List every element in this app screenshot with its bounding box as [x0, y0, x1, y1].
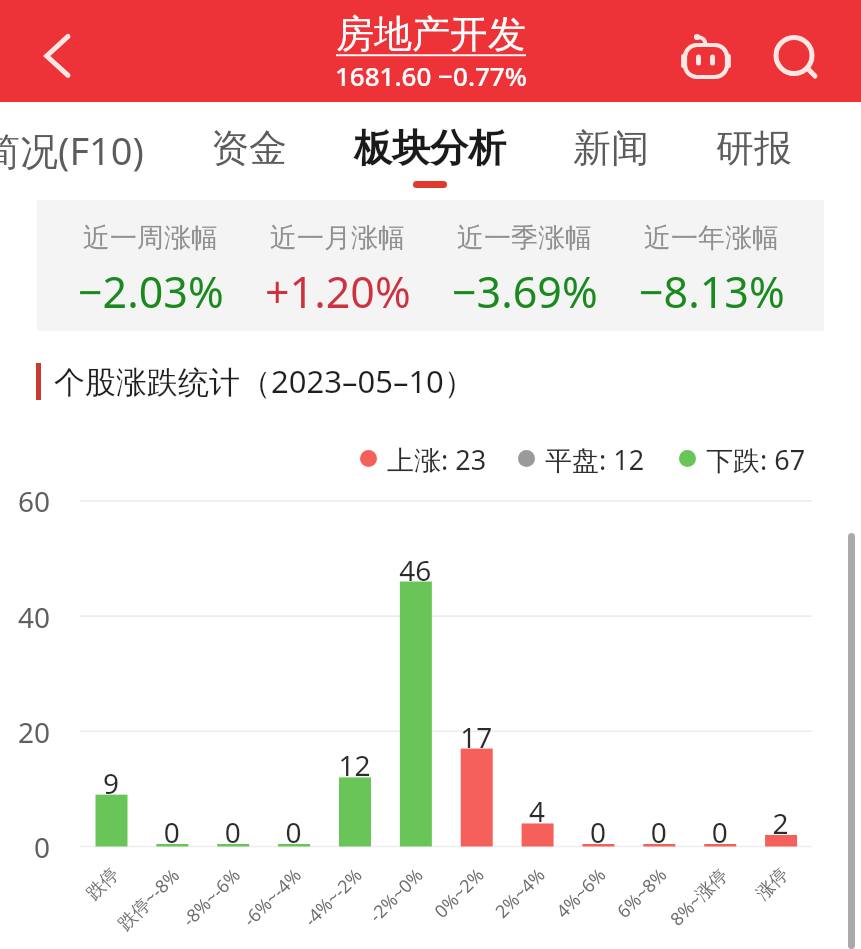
staticText: 下跌: 67 [706, 441, 806, 475]
staticText: 1681.60 −0.77% [335, 58, 527, 93]
staticText: 近一月涨幅 [270, 221, 405, 255]
button[interactable]: 近一月涨幅 [244, 210, 431, 321]
button[interactable]: 上涨: 23 [360, 441, 487, 475]
staticText: 近一季涨幅 [457, 221, 592, 255]
button[interactable]: Search [764, 25, 824, 85]
button[interactable] [665, 110, 805, 180]
staticText: 房地产开发 [336, 10, 526, 58]
staticText: −3.69% [452, 262, 598, 321]
button[interactable]: 平盘: 12 [518, 441, 645, 475]
button[interactable]: 近一年涨幅 [618, 210, 805, 321]
button[interactable]: 近一季涨幅 [431, 210, 618, 321]
staticText: 近一周涨幅 [83, 221, 218, 255]
staticText: 平盘: 12 [545, 441, 645, 475]
button[interactable] [0, 110, 170, 180]
staticText: −8.13% [639, 262, 785, 321]
button[interactable] [310, 110, 525, 180]
button[interactable]: 下跌: 67 [679, 441, 806, 475]
staticText: 上涨: 23 [387, 441, 487, 475]
staticText: +1.20% [265, 262, 411, 321]
button[interactable] [525, 110, 665, 180]
button[interactable] [170, 110, 310, 180]
button[interactable]: 近一周涨幅 [57, 210, 244, 321]
staticText: 近一年涨幅 [644, 221, 779, 255]
staticText: −2.03% [78, 262, 224, 321]
button[interactable]: AI assistant [676, 25, 736, 85]
staticText: 个股涨跌统计（2023–05–10） [54, 360, 475, 402]
button[interactable]: Back [18, 26, 78, 86]
